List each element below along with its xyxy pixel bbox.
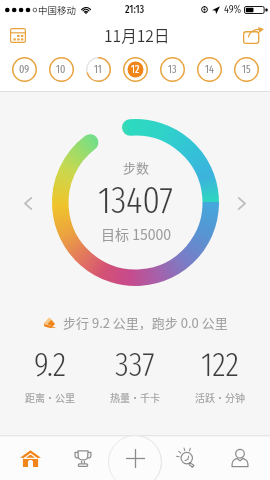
staticText: 122: [201, 344, 239, 385]
button[interactable]: 13: [157, 54, 187, 84]
staticText: 12: [131, 63, 140, 76]
button[interactable]: Share: [241, 23, 265, 47]
staticText: 9.2: [34, 344, 67, 385]
staticText: 热量·千卡: [110, 390, 160, 404]
button[interactable]: 12: [120, 54, 150, 84]
staticText: 活跃·分钟: [195, 390, 245, 404]
staticText: 11: [94, 63, 102, 76]
staticText: 15: [242, 63, 251, 76]
staticText: 337: [115, 344, 155, 385]
staticText: 10: [56, 63, 66, 76]
button[interactable]: Discover: [165, 436, 209, 480]
button[interactable]: Home: [8, 436, 52, 480]
button[interactable]: Previous day: [17, 192, 39, 214]
button[interactable]: 337: [92, 344, 177, 404]
staticText: 13407: [98, 177, 174, 223]
staticText: 中国移动: [38, 3, 77, 17]
staticText: 步行 9.2 公里，跑步 0.0 公里: [63, 313, 228, 332]
button[interactable]: 14: [194, 54, 224, 84]
button[interactable]: Profile: [218, 436, 262, 480]
button[interactable]: 10: [46, 54, 76, 84]
button[interactable]: 9.2: [8, 344, 92, 404]
button[interactable]: 15: [231, 54, 261, 84]
staticText: 14: [205, 63, 214, 76]
button[interactable]: 09: [9, 54, 39, 84]
staticText: 21:13: [125, 3, 145, 16]
staticText: 11月12日: [104, 24, 170, 46]
staticText: 距离·公里: [25, 390, 75, 404]
button[interactable]: Next day: [231, 192, 253, 214]
button[interactable]: Add: [113, 436, 157, 480]
staticText: 49%: [224, 3, 242, 16]
staticText: 目标 15000: [101, 224, 171, 244]
staticText: 步数: [123, 158, 150, 177]
button[interactable]: 11: [83, 54, 113, 84]
staticText: 09: [19, 63, 30, 76]
staticText: 13: [168, 63, 177, 76]
button[interactable]: Achievements: [61, 436, 105, 480]
button[interactable]: Calendar: [6, 23, 30, 47]
button[interactable]: 122: [177, 344, 262, 404]
